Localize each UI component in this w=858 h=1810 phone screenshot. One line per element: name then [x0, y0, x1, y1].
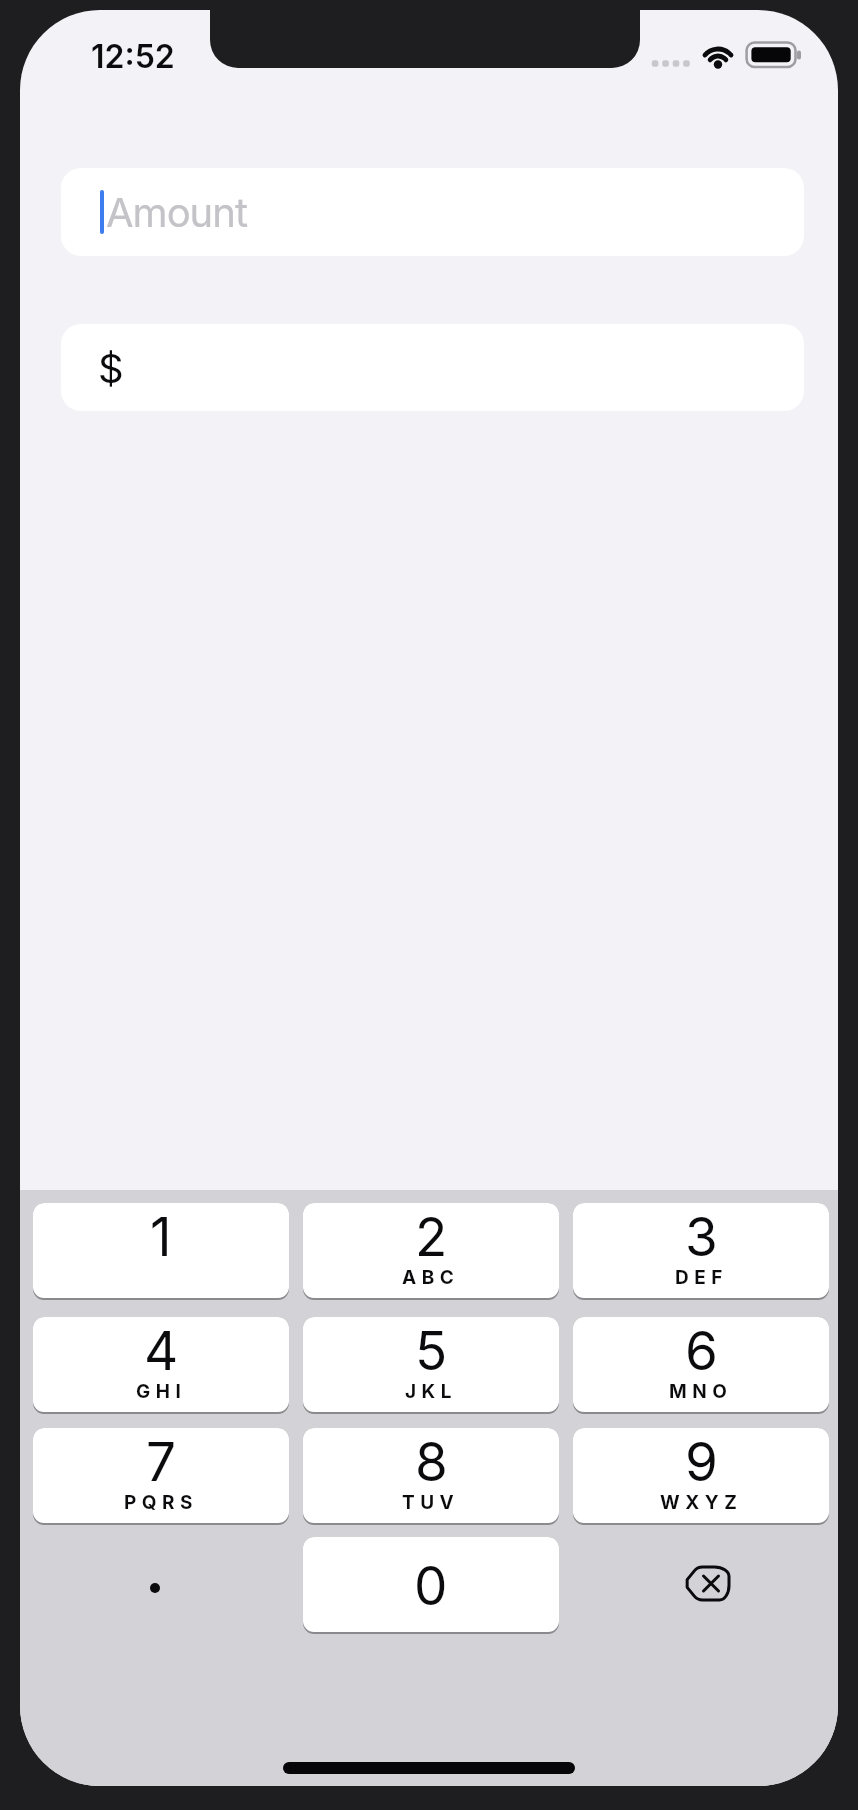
staticText: 2 — [415, 1205, 448, 1269]
button[interactable]: 5 — [303, 1317, 559, 1414]
staticText: DEF — [675, 1266, 728, 1289]
button[interactable]: 3 — [573, 1203, 829, 1300]
button[interactable]: 4 — [33, 1317, 289, 1414]
button[interactable]: $ — [61, 324, 804, 411]
staticText: 6 — [685, 1319, 718, 1383]
staticText: GHI — [136, 1380, 187, 1403]
staticText: 8 — [415, 1430, 448, 1494]
button[interactable]: Amount — [61, 168, 804, 256]
button[interactable]: 8 — [303, 1428, 559, 1525]
button[interactable]: 9 — [573, 1428, 829, 1525]
staticText: 9 — [685, 1430, 718, 1494]
staticText: PQRS — [124, 1491, 198, 1514]
staticText: TUV — [402, 1491, 460, 1514]
button[interactable]: 6 — [573, 1317, 829, 1414]
button[interactable] — [573, 1537, 829, 1634]
staticText: ABC — [402, 1266, 460, 1289]
button[interactable]: 7 — [33, 1428, 289, 1525]
staticText: 7 — [146, 1430, 176, 1494]
button[interactable]: 0 — [303, 1537, 559, 1634]
staticText: 12:52 — [91, 37, 175, 76]
staticText: 4 — [144, 1319, 179, 1383]
staticText: WXYZ — [660, 1491, 743, 1514]
staticText: MNO — [669, 1380, 733, 1403]
button[interactable]: 1 — [33, 1203, 289, 1300]
staticText: 5 — [415, 1319, 448, 1383]
staticText: JKL — [405, 1380, 458, 1403]
staticText: 0 — [414, 1554, 448, 1618]
staticText: Amount — [106, 188, 247, 236]
button[interactable] — [33, 1537, 289, 1634]
staticText: 3 — [685, 1205, 718, 1269]
button[interactable]: 2 — [303, 1203, 559, 1300]
staticText: $ — [98, 344, 124, 392]
staticText: 1 — [150, 1205, 172, 1269]
